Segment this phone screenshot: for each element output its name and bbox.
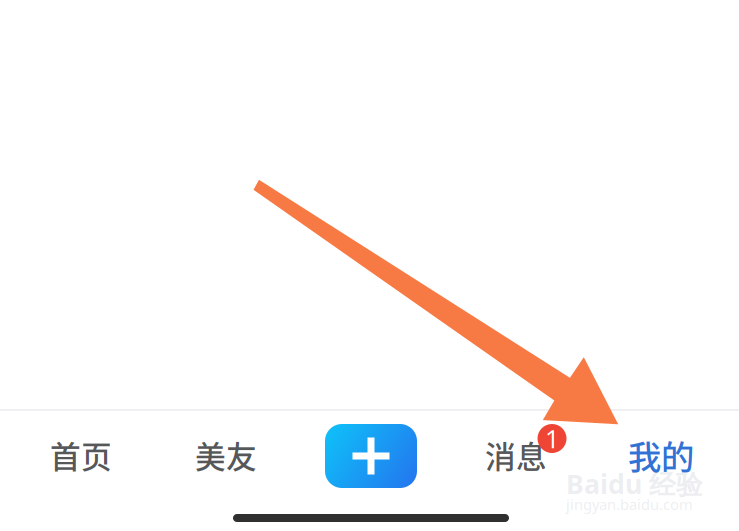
staticText: 美友: [195, 433, 257, 477]
staticText: Baidu 经验: [566, 466, 703, 502]
button[interactable]: 消息: [446, 412, 586, 498]
button[interactable]: 首页: [11, 412, 151, 498]
staticText: 消息: [485, 433, 547, 477]
button[interactable]: 我的: [591, 412, 731, 498]
staticText: 1: [545, 422, 559, 455]
button[interactable]: 美友: [156, 412, 296, 498]
staticText: 我的: [628, 431, 694, 479]
button[interactable]: 发布: [301, 413, 441, 499]
staticText: jingyan.baidu.com: [566, 495, 693, 514]
staticText: 首页: [50, 433, 112, 477]
